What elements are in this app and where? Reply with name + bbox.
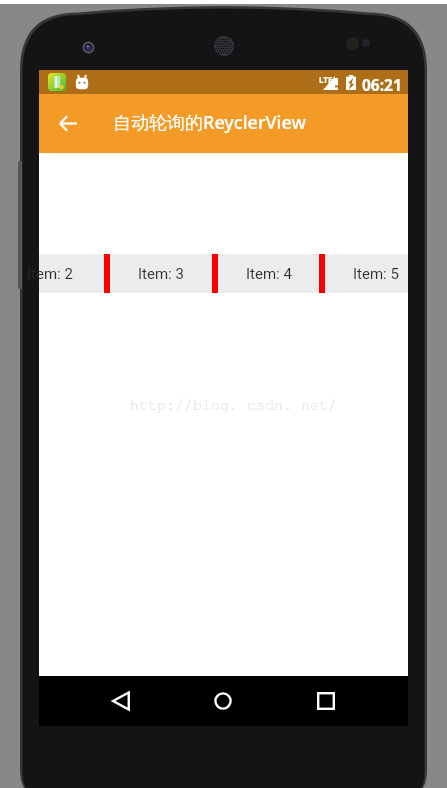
- button[interactable]: Back: [44, 94, 92, 153]
- button[interactable]: Recents: [302, 676, 350, 726]
- button[interactable]: Home: [199, 676, 247, 726]
- staticText: http://blog. csdn. net/: [130, 398, 338, 413]
- button[interactable]: Item: 3: [110, 254, 212, 293]
- staticText: Item: 4: [246, 265, 292, 283]
- staticText: 自动轮询的ReyclerView: [113, 110, 306, 135]
- staticText: LTE: [319, 74, 333, 85]
- staticText: Item: 2: [27, 265, 73, 283]
- staticText: 06:21: [362, 74, 402, 95]
- button[interactable]: Item: 5: [325, 254, 427, 293]
- button[interactable]: Item: 2: [0, 254, 104, 293]
- staticText: Item: 5: [353, 265, 399, 283]
- button[interactable]: Back: [97, 676, 145, 726]
- staticText: Item: 3: [138, 265, 184, 283]
- button[interactable]: Item: 4: [218, 254, 319, 293]
